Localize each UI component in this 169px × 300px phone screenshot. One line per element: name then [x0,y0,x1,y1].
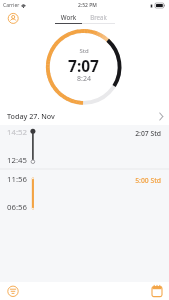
button[interactable]: Today 27. Nov [0,107,169,125]
staticText: 11:56 [7,174,27,185]
staticText: 14:52 [7,127,27,138]
staticText: Break [82,13,115,21]
staticText: 12:45 [7,155,27,166]
button[interactable]: Break [82,13,115,24]
staticText: Work [55,13,82,21]
staticText: Today 27. Nov [7,111,55,121]
button[interactable]: 14:52 [0,125,169,167]
staticText: 5:00 Std [0,176,161,185]
staticText: 2:07 Std [0,129,161,138]
button[interactable]: Work [55,13,82,24]
staticText: 7:07 [68,55,99,76]
staticText: 8:24 [77,74,91,84]
button[interactable]: Entries [4,283,22,300]
staticText: Std [79,47,89,55]
button[interactable]: Calendar [150,284,164,298]
staticText: Carrier [3,2,20,9]
staticText: 06:56 [7,202,27,213]
staticText: 2:52 PM [78,2,97,9]
button[interactable]: Profile [3,12,24,33]
button[interactable]: 11:56 [0,172,169,214]
